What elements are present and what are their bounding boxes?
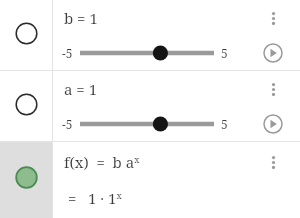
staticText: = 1 · 1x [68, 188, 122, 208]
button[interactable]: Slider for b [73, 40, 221, 66]
button[interactable]: Toggle visibility of f [0, 142, 52, 218]
staticText: -5 [62, 116, 73, 132]
button[interactable]: Animate a [257, 108, 289, 140]
button[interactable]: Slider for a [73, 111, 221, 137]
staticText: 5 [221, 116, 228, 132]
staticText: a = 1 [64, 79, 98, 99]
button[interactable]: More options [256, 145, 290, 179]
button[interactable]: Toggle visibility of a [0, 71, 52, 141]
button[interactable]: Toggle visibility of b [0, 0, 52, 70]
staticText: f(x) = b ax [64, 152, 140, 172]
button[interactable]: More options [256, 72, 290, 106]
staticText: 5 [221, 45, 228, 61]
button[interactable]: Animate b [257, 37, 289, 69]
staticText: b = 1 [64, 8, 98, 28]
button[interactable]: More options [256, 1, 290, 35]
staticText: -5 [62, 45, 73, 61]
